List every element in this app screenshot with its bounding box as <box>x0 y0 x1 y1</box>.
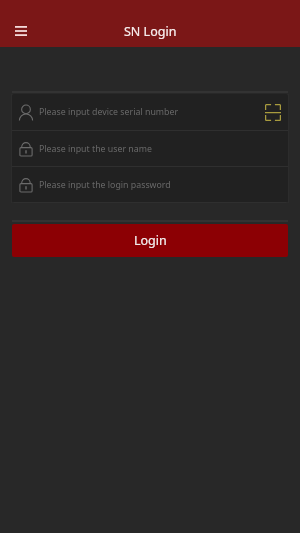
button[interactable]: Login <box>12 224 288 257</box>
staticText: Please input the user name <box>39 143 152 155</box>
button[interactable]: Please input device serial number <box>12 94 288 130</box>
button[interactable]: Scan QR code <box>258 97 288 127</box>
staticText: Login <box>134 232 167 249</box>
staticText: Please input the login password <box>39 179 171 191</box>
button[interactable]: Menu <box>7 17 35 44</box>
staticText: SN Login <box>124 23 177 40</box>
button[interactable]: Please input the user name <box>12 131 288 166</box>
staticText: Please input device serial number <box>39 106 179 118</box>
button[interactable]: Please input the login password <box>12 167 288 202</box>
